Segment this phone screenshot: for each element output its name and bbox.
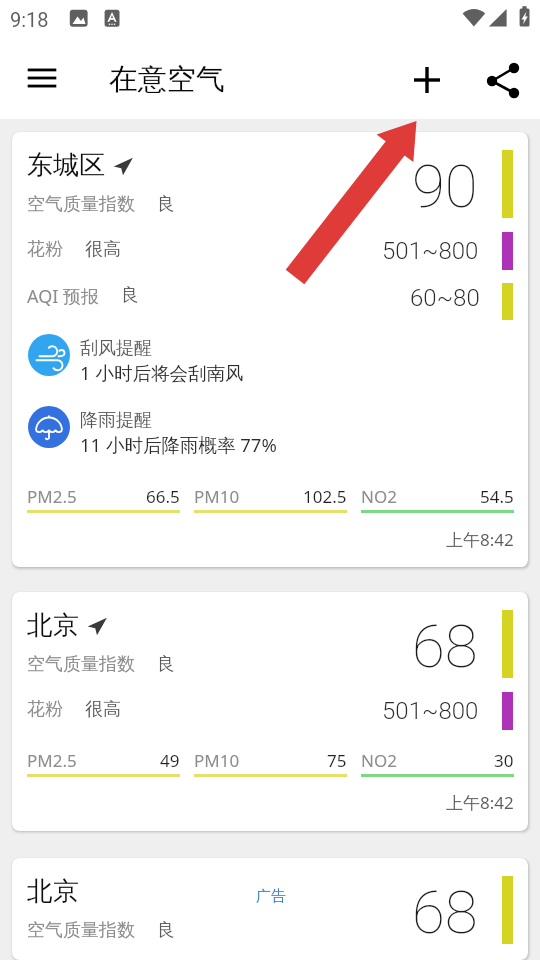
staticText: 东城区	[27, 149, 105, 182]
staticText: 良	[157, 193, 175, 216]
staticText: PM10	[194, 749, 240, 772]
button[interactable]: 北京	[12, 592, 528, 831]
staticText: 30	[494, 749, 514, 772]
staticText: 501~800	[382, 237, 479, 265]
staticText: 空气质量指数	[27, 193, 135, 216]
staticText: 上午8:42	[446, 528, 514, 551]
staticText: 9:18	[10, 8, 49, 31]
staticText: 60~80	[410, 284, 480, 312]
staticText: 1 小时后将会刮南风	[80, 360, 244, 385]
staticText: 68	[412, 877, 478, 947]
staticText: 68	[412, 611, 478, 681]
button[interactable]: 刮风提醒	[12, 132, 528, 385]
staticText: 49	[160, 749, 180, 772]
button[interactable]: 北京	[12, 858, 528, 960]
staticText: 66.5	[146, 485, 180, 508]
staticText: 北京	[27, 875, 79, 908]
staticText: 空气质量指数	[27, 919, 135, 942]
button[interactable]: Add	[401, 54, 453, 106]
staticText: AQI 预报	[27, 284, 99, 309]
staticText: 很高	[85, 698, 121, 721]
staticText: 75	[327, 749, 347, 772]
staticText: 花粉	[27, 238, 63, 261]
staticText: NO2	[361, 749, 397, 772]
staticText: 上午8:42	[446, 791, 514, 814]
staticText: 90	[412, 151, 478, 221]
staticText: 花粉	[27, 698, 63, 721]
staticText: 良	[157, 653, 175, 676]
button[interactable]: Share	[477, 54, 529, 106]
staticText: 102.5	[303, 485, 347, 508]
staticText: 刮风提醒	[80, 337, 152, 360]
staticText: 很高	[85, 238, 121, 261]
button[interactable]: 东城区	[12, 132, 528, 567]
button[interactable]: 降雨提醒	[12, 132, 528, 457]
staticText: PM2.5	[27, 749, 77, 772]
staticText: 501~800	[382, 697, 479, 725]
staticText: 良	[121, 284, 139, 307]
staticText: NO2	[361, 485, 397, 508]
staticText: 11 小时后降雨概率 77%	[80, 432, 277, 457]
staticText: 降雨提醒	[80, 409, 152, 432]
staticText: PM2.5	[27, 485, 77, 508]
staticText: 广告	[256, 887, 286, 906]
staticText: 在意空气	[109, 61, 225, 98]
staticText: 北京	[27, 609, 79, 642]
staticText: 良	[157, 919, 175, 942]
staticText: 54.5	[480, 485, 514, 508]
staticText: PM10	[194, 485, 240, 508]
staticText: 空气质量指数	[27, 653, 135, 676]
button[interactable]: Menu	[14, 52, 70, 108]
